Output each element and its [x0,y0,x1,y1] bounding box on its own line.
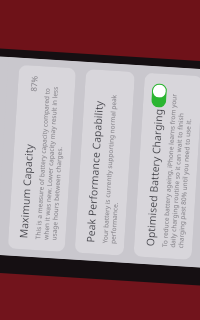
staticText: This is a measure of battery capacity co… [33,76,69,240]
staticText: To reduce battery ageing, iPhone learns … [160,84,195,248]
staticText: Optimised Battery Charging [143,108,166,247]
button[interactable]: Optimised Battery Charging toggle [151,83,167,108]
staticText: Peak Performance Capability [83,100,106,243]
staticText: Maximum Capacity [16,143,36,239]
staticText: 87% [28,75,40,92]
button[interactable]: Optimised Battery Charging [133,73,200,260]
button[interactable]: Peak Performance Capability [75,69,135,256]
button[interactable]: Maximum Capacity [8,65,76,252]
staticText: Your battery is currently supporting nor… [100,80,127,244]
